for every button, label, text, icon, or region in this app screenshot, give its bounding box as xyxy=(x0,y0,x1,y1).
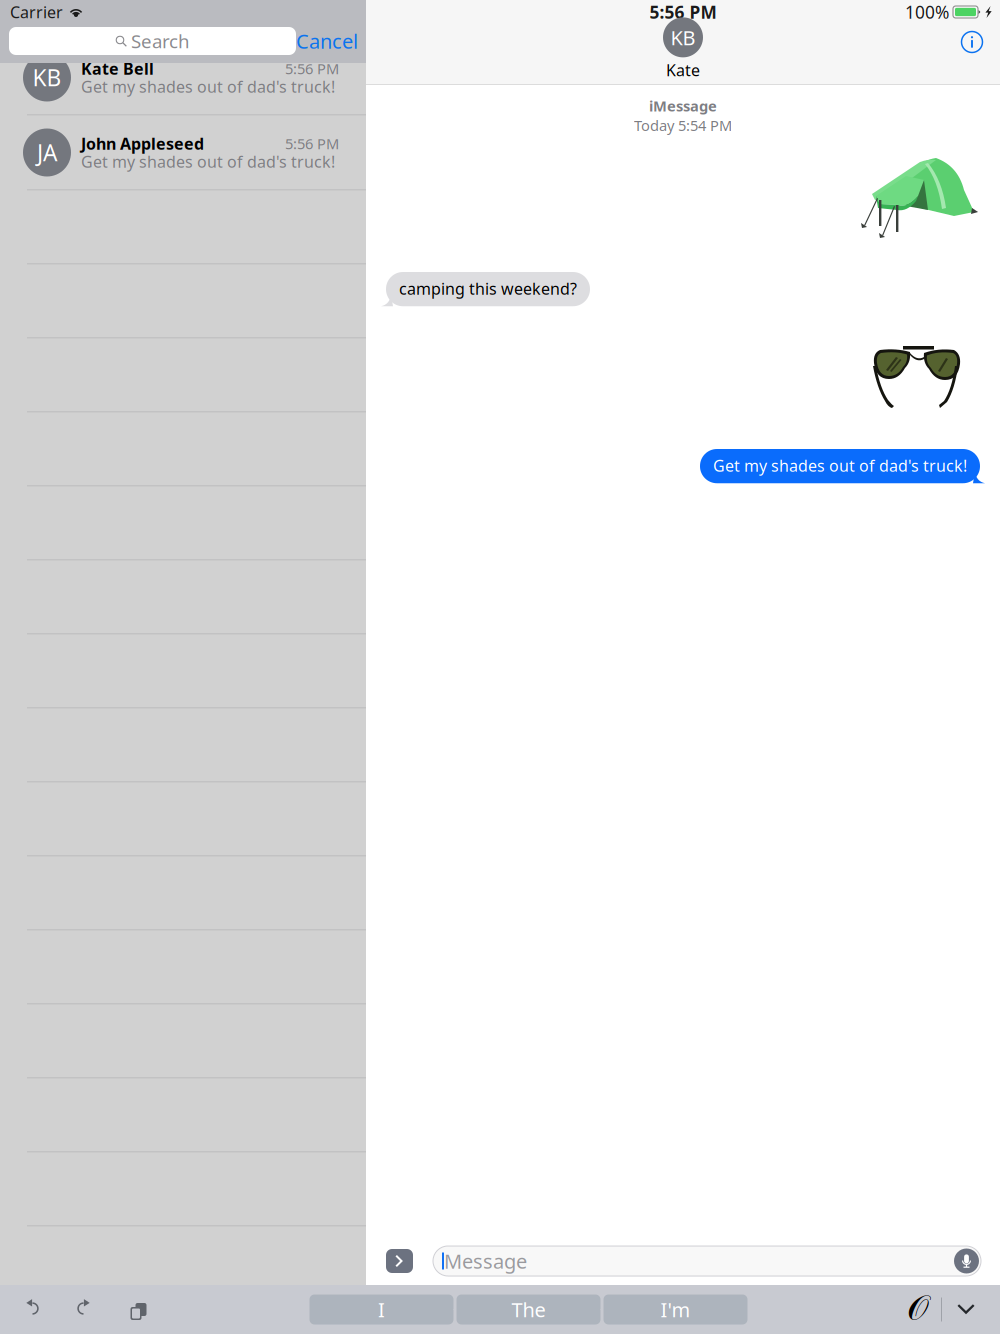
staticText: Message xyxy=(444,1248,527,1274)
button[interactable]: The xyxy=(456,1294,600,1324)
button[interactable]: Handwriting xyxy=(895,1285,941,1334)
staticText: 5:56 PM xyxy=(649,0,716,23)
staticText: KB xyxy=(670,24,695,51)
staticText: John Appleseed xyxy=(81,133,204,154)
staticText: Kate xyxy=(666,59,700,81)
staticText: Carrier xyxy=(10,1,63,23)
staticText: Today 5:54 PM xyxy=(634,115,732,135)
staticText: KB xyxy=(32,62,61,92)
staticText: 5:56 PM xyxy=(285,134,339,153)
button[interactable]: KB xyxy=(0,40,366,114)
staticText: 100% xyxy=(905,0,949,23)
staticText: The xyxy=(511,1296,545,1323)
staticText: I'm xyxy=(660,1296,690,1323)
button[interactable]: Details xyxy=(953,23,991,61)
button[interactable]: I xyxy=(309,1294,453,1324)
button[interactable]: Redo xyxy=(58,1285,110,1334)
staticText: camping this weekend? xyxy=(399,278,577,299)
staticText: Search xyxy=(131,29,190,53)
button[interactable]: JA xyxy=(0,115,366,189)
button[interactable]: Apps xyxy=(386,1249,413,1273)
button[interactable]: Cancel xyxy=(296,27,358,55)
button[interactable]: KB xyxy=(613,19,753,79)
staticText: I xyxy=(378,1296,385,1323)
staticText: Get my shades out of dad's truck! xyxy=(81,76,335,97)
staticText: 𝒪 xyxy=(907,1293,929,1326)
staticText: Get my shades out of dad's truck! xyxy=(713,455,967,476)
button[interactable]: Hide keyboard xyxy=(942,1285,990,1334)
staticText: JA xyxy=(37,137,57,167)
staticText: Cancel xyxy=(296,28,358,54)
staticText: Get my shades out of dad's truck! xyxy=(81,151,335,172)
button[interactable]: Undo xyxy=(6,1285,58,1334)
staticText: Kate Bell xyxy=(81,58,154,79)
button[interactable]: Paste xyxy=(110,1285,162,1334)
staticText: 5:56 PM xyxy=(285,59,339,78)
button[interactable]: I'm xyxy=(603,1294,747,1324)
staticText: iMessage xyxy=(649,96,717,115)
